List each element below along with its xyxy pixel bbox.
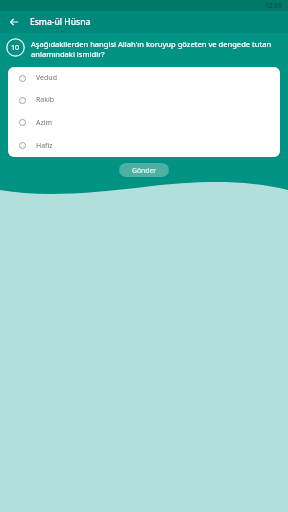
staticText: 12:59 (265, 1, 282, 10)
staticText: Rakib (36, 95, 55, 105)
button[interactable]: Hafiz (8, 134, 280, 157)
button[interactable]: Gönder (119, 163, 169, 177)
button[interactable]: Vedud (8, 67, 280, 89)
staticText: 10 (11, 43, 20, 53)
staticText: Gönder (132, 166, 157, 175)
button[interactable]: Azim (8, 111, 280, 134)
staticText: Azim (36, 118, 53, 128)
staticText: Hafiz (36, 141, 53, 151)
staticText: Aşağıdakilerden hangisi Allah'ın koruyup… (31, 39, 278, 59)
button[interactable]: Back (4, 12, 24, 32)
staticText: Vedud (36, 73, 57, 83)
staticText: Esma-ül Hüsna (30, 16, 91, 28)
button[interactable]: Rakib (8, 89, 280, 111)
